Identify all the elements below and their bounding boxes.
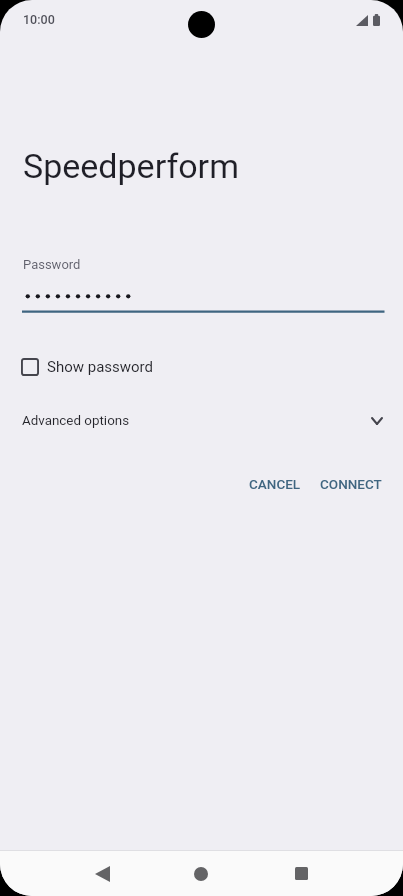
button[interactable]: Show password [0,350,403,384]
button[interactable]: Recent apps [277,851,325,896]
button[interactable]: CANCEL [241,468,309,500]
button[interactable]: Home [177,851,225,896]
staticText: Show password [47,358,154,376]
button[interactable]: Advanced options [0,406,403,436]
staticText: CONNECT [320,476,382,492]
staticText: CANCEL [249,476,301,492]
staticText: Password [23,257,81,272]
button[interactable]: CONNECT [312,468,390,500]
staticText: 10:00 [23,12,55,27]
button[interactable]: Back [78,851,126,896]
staticText: Advanced options [22,413,130,429]
button[interactable]: Password field [0,286,403,316]
staticText: Speedperform [23,146,239,186]
